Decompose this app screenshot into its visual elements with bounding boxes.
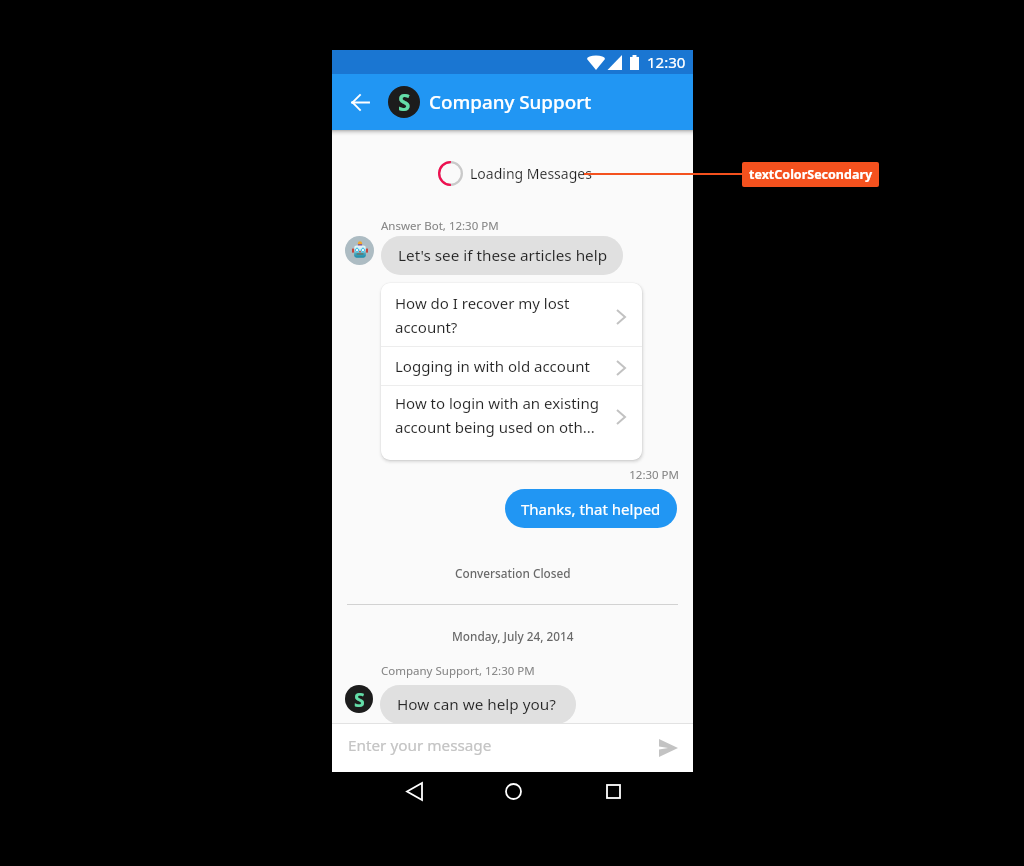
button[interactable]: Recents xyxy=(593,771,633,811)
staticText: Company Support xyxy=(429,89,592,115)
staticText: Logging in with old account xyxy=(395,356,610,376)
button[interactable]: How do I recover my lost account? xyxy=(381,283,642,346)
staticText: S xyxy=(398,87,411,118)
button[interactable]: Back xyxy=(394,771,434,811)
button[interactable]: Enter your message xyxy=(348,724,652,772)
staticText: Monday, July 24, 2014 xyxy=(452,628,574,644)
staticText: How do I recover my lost account? xyxy=(395,293,610,337)
staticText: S xyxy=(354,686,365,713)
staticText: 12:30 PM xyxy=(332,467,679,483)
staticText: Answer Bot, 12:30 PM xyxy=(381,218,499,234)
button[interactable]: Logging in with old account xyxy=(381,347,642,385)
button[interactable]: Thanks, that helped xyxy=(505,489,677,528)
staticText: Let's see if these articles help xyxy=(398,245,608,266)
button[interactable]: Send xyxy=(652,732,684,764)
button[interactable]: How can we help you? xyxy=(380,685,576,724)
staticText: How can we help you? xyxy=(397,694,556,715)
staticText: 12:30 xyxy=(647,52,686,72)
staticText: Thanks, that helped xyxy=(521,499,661,519)
staticText: Loading Messages xyxy=(470,164,592,183)
staticText: Company Support, 12:30 PM xyxy=(381,663,535,679)
button[interactable]: Navigate up xyxy=(336,78,384,126)
staticText: Enter your message xyxy=(348,735,492,756)
button[interactable]: Let's see if these articles help xyxy=(381,236,623,275)
button[interactable]: How to login with an existing account be… xyxy=(381,386,642,460)
staticText: Conversation Closed xyxy=(455,565,571,581)
staticText: textColorSecondary xyxy=(749,166,873,183)
button[interactable]: Home xyxy=(493,771,533,811)
staticText: How to login with an existing account be… xyxy=(395,393,610,437)
